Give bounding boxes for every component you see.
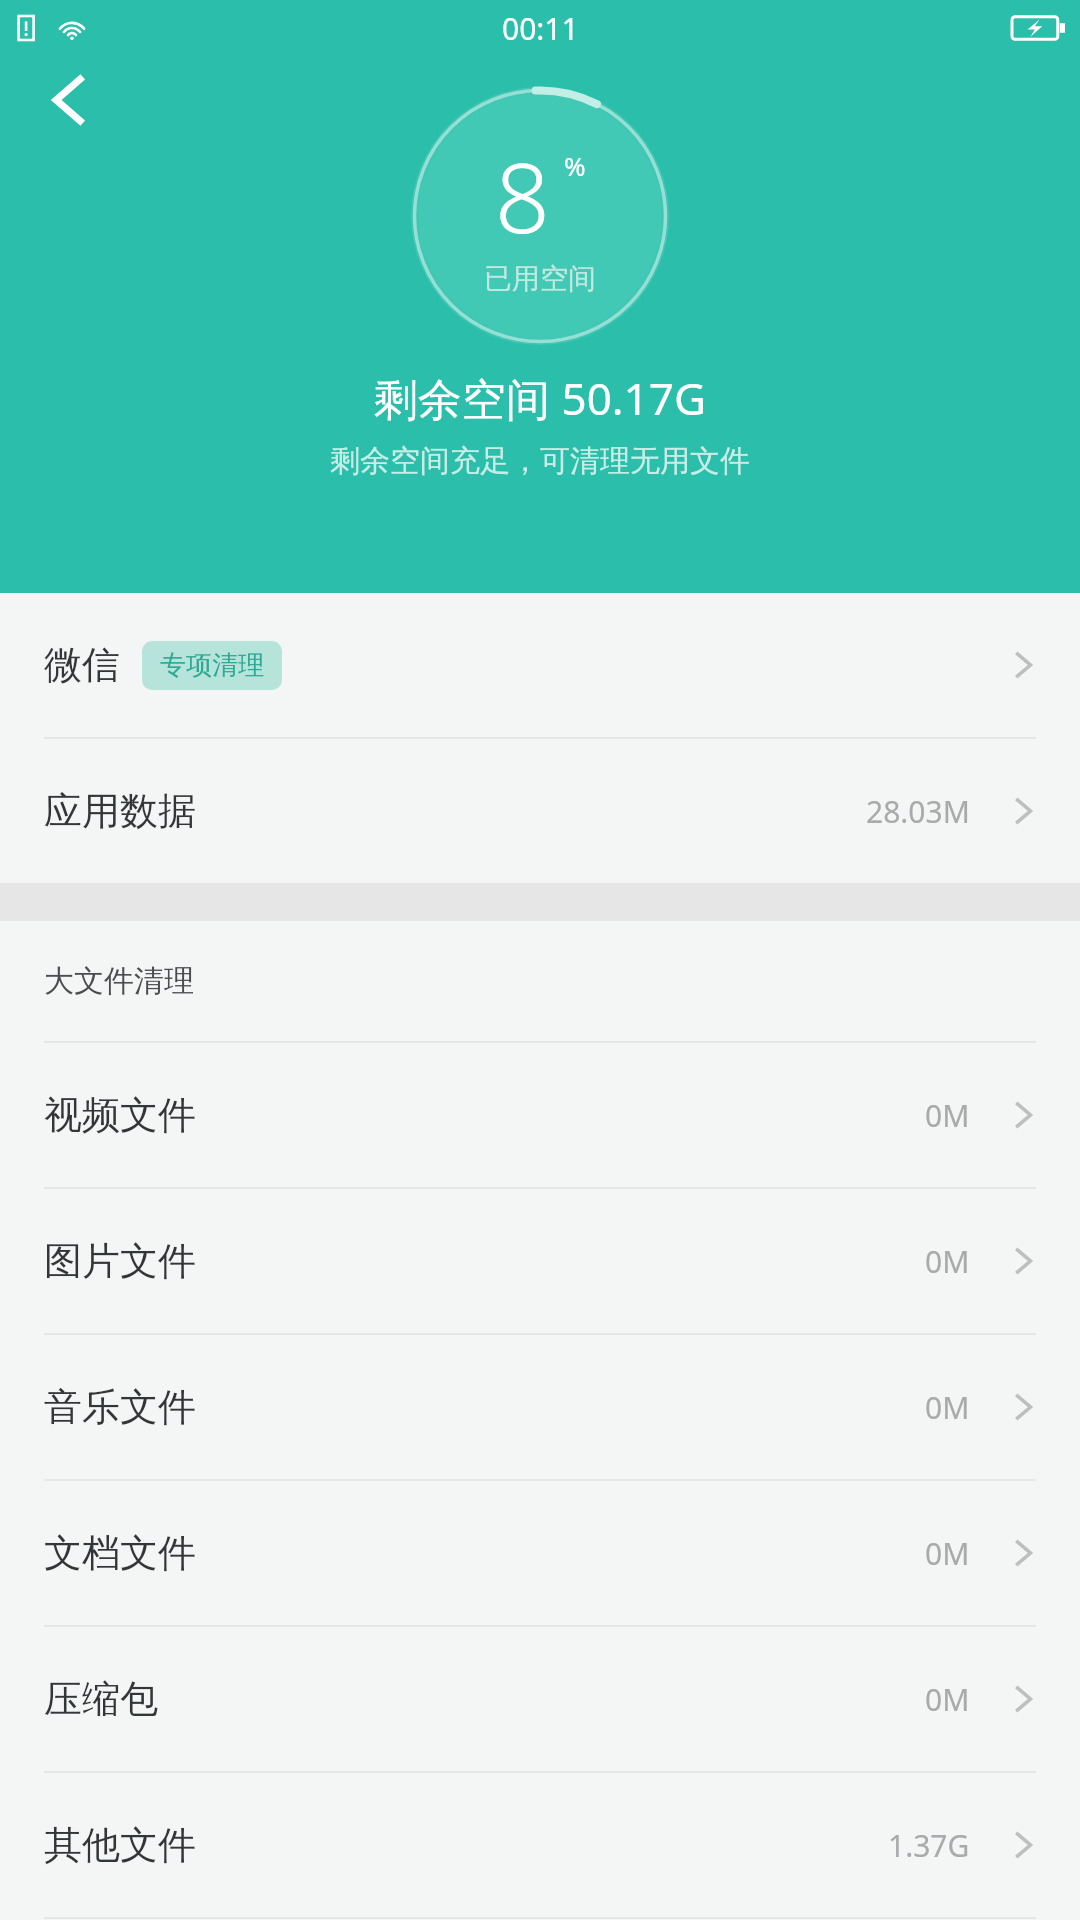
button[interactable]: 视频文件 [0,1043,1080,1187]
staticText: 剩余空间 50.17G [374,368,706,428]
button[interactable]: 压缩包 [0,1627,1080,1771]
staticText: 其他文件 [44,1821,196,1869]
staticText: % [564,148,586,183]
button[interactable]: 音乐文件 [0,1335,1080,1479]
staticText: 已用空间 [484,261,596,296]
staticText: 8 [495,130,550,261]
staticText: 专项清理 [160,649,264,682]
staticText: 1.37G [888,1825,970,1866]
staticText: 00:11 [502,8,579,49]
staticText: 0M [925,1387,970,1428]
button[interactable]: 文档文件 [0,1481,1080,1625]
staticText: 0M [925,1533,970,1574]
staticText: 视频文件 [44,1091,196,1139]
staticText: 0M [925,1241,970,1282]
staticText: 文档文件 [44,1529,196,1577]
button[interactable]: 图片文件 [0,1189,1080,1333]
staticText: 音乐文件 [44,1383,196,1431]
staticText: 应用数据 [44,787,196,835]
staticText: 0M [925,1095,970,1136]
staticText: 剩余空间充足，可清理无用文件 [330,442,750,480]
button[interactable]: 其他文件 [0,1773,1080,1917]
staticText: 微信 [44,641,120,689]
staticText: 28.03M [866,791,970,832]
button[interactable]: 应用数据 [0,739,1080,883]
staticText: 压缩包 [44,1675,158,1723]
staticText: 图片文件 [44,1237,196,1285]
button[interactable]: 微信 [0,593,1080,737]
staticText: 0M [925,1679,970,1720]
staticText: 大文件清理 [44,962,194,1000]
button[interactable]: Back [14,44,126,156]
